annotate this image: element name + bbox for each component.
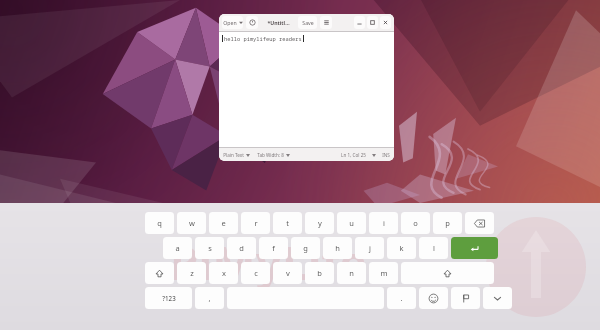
button[interactable]: f [259, 237, 288, 259]
staticText: c [254, 268, 258, 278]
staticText: w [189, 218, 195, 228]
button[interactable]: Maximize [367, 16, 378, 29]
button[interactable]: y [305, 212, 334, 234]
staticText: j [369, 243, 371, 253]
button[interactable]: w [177, 212, 206, 234]
staticText: t [286, 218, 289, 228]
staticText: r [254, 218, 258, 228]
button[interactable]: e [209, 212, 238, 234]
button[interactable]: Hide keyboard [483, 287, 512, 309]
staticText: *Untitl… [267, 19, 290, 26]
button[interactable]: Backspace [465, 212, 494, 234]
staticText: y [318, 218, 322, 228]
button[interactable]: *Untitl… [261, 16, 295, 29]
button[interactable]: d [227, 237, 256, 259]
staticText: u [349, 218, 354, 228]
staticText: n [349, 268, 354, 278]
staticText: Tab Width: 8 [257, 152, 284, 158]
staticText: m [380, 268, 388, 278]
button[interactable]: h [323, 237, 352, 259]
button[interactable]: n [337, 262, 366, 284]
staticText: b [317, 268, 322, 278]
staticText: Save [302, 19, 314, 26]
button[interactable]: a [163, 237, 192, 259]
button[interactable]: b [305, 262, 334, 284]
staticText: k [399, 243, 404, 253]
button[interactable]: u [337, 212, 366, 234]
button[interactable]: Save file [298, 16, 317, 29]
button[interactable]: Emoji [419, 287, 448, 309]
button[interactable]: Change language [451, 287, 480, 309]
staticText: ?123 [162, 294, 176, 302]
button[interactable]: Open file [222, 16, 243, 29]
button[interactable]: g [291, 237, 320, 259]
button[interactable]: , [195, 287, 224, 309]
button[interactable]: s [195, 237, 224, 259]
button[interactable]: i [369, 212, 398, 234]
button[interactable]: c [241, 262, 270, 284]
button[interactable]: t [273, 212, 302, 234]
button[interactable]: Ln 1, Col 25 [341, 152, 376, 158]
button[interactable]: Tab Width: 8 [257, 152, 290, 158]
button[interactable]: Enter [451, 237, 498, 259]
staticText: s [208, 243, 212, 253]
button[interactable]: p [433, 212, 462, 234]
staticText: , [208, 293, 211, 303]
staticText: i [383, 218, 385, 228]
button[interactable]: x [209, 262, 238, 284]
button[interactable]: Shift [401, 262, 494, 284]
button[interactable]: Close window [380, 16, 391, 29]
button[interactable]: m [369, 262, 398, 284]
staticText: Plain Text [223, 152, 244, 158]
staticText: p [445, 218, 450, 228]
button[interactable]: j [355, 237, 384, 259]
staticText: h [335, 243, 340, 253]
staticText: v [286, 268, 290, 278]
button[interactable]: v [273, 262, 302, 284]
button[interactable]: Minimize [354, 16, 365, 29]
staticText: o [413, 218, 418, 228]
button[interactable]: Recent files [246, 16, 258, 29]
staticText: f [272, 243, 275, 253]
button[interactable]: ?123 [145, 287, 192, 309]
staticText: Ln 1, Col 25 [341, 152, 366, 158]
button[interactable]: o [401, 212, 430, 234]
staticText: e [221, 218, 226, 228]
staticText: g [303, 243, 308, 253]
button[interactable]: q [145, 212, 174, 234]
button[interactable]: hello pimylifeup readers [219, 32, 394, 147]
button[interactable]: l [419, 237, 448, 259]
button[interactable]: r [241, 212, 270, 234]
staticText: l [433, 243, 435, 253]
staticText: INS [382, 152, 390, 158]
staticText: x [222, 268, 226, 278]
button[interactable]: Shift [145, 262, 174, 284]
staticText: d [239, 243, 244, 253]
staticText: . [400, 293, 403, 303]
staticText: Open [223, 19, 237, 26]
button[interactable]: k [387, 237, 416, 259]
staticText: z [190, 268, 194, 278]
button[interactable]: z [177, 262, 206, 284]
staticText: hello pimylifeup readers [224, 35, 302, 42]
button[interactable]: Plain Text [223, 152, 250, 158]
button[interactable]: . [387, 287, 416, 309]
staticText: a [175, 243, 180, 253]
staticText: PiMyLife [170, 231, 367, 294]
staticText: q [157, 218, 162, 228]
button[interactable]: Main menu [320, 16, 332, 29]
